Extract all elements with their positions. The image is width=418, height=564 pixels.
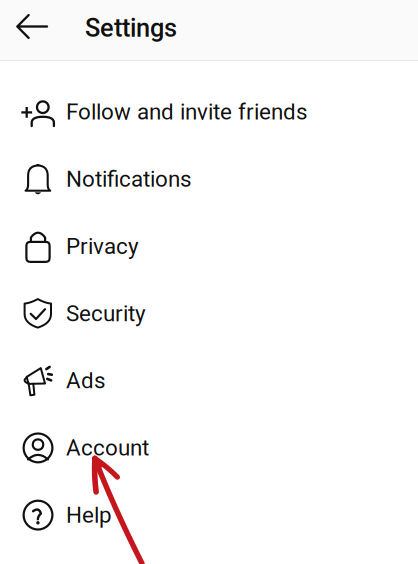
button[interactable]: Follow and invite friends [0,78,418,145]
staticText: Follow and invite friends [66,99,308,125]
button[interactable]: Help [0,481,418,549]
staticText: Privacy [66,233,139,259]
staticText: Settings [85,13,177,43]
staticText: Ads [66,368,106,394]
button[interactable]: Privacy [0,213,418,280]
button[interactable]: Back [0,6,64,54]
button[interactable]: About [0,549,418,564]
staticText: Security [66,300,146,327]
staticText: Account [66,435,149,461]
staticText: Notifications [66,166,192,192]
button[interactable]: Notifications [0,145,418,213]
staticText: Help [66,502,112,528]
button[interactable]: Ads [0,347,418,414]
button[interactable]: Security [0,280,418,347]
button[interactable]: Account [0,414,418,481]
